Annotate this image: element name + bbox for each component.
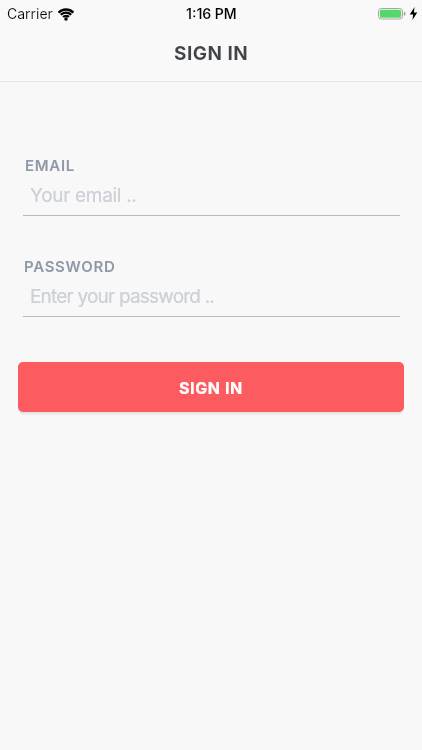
staticText: SIGN IN xyxy=(179,378,243,397)
button[interactable]: SIGN IN xyxy=(18,362,404,412)
staticText: 1:16 PM xyxy=(186,5,237,22)
staticText: PASSWORD xyxy=(24,257,116,275)
staticText: SIGN IN xyxy=(174,42,249,65)
staticText: Enter your password .. xyxy=(30,285,214,308)
staticText: EMAIL xyxy=(25,156,75,174)
staticText: Carrier xyxy=(7,5,53,22)
staticText: Your email .. xyxy=(30,184,137,207)
